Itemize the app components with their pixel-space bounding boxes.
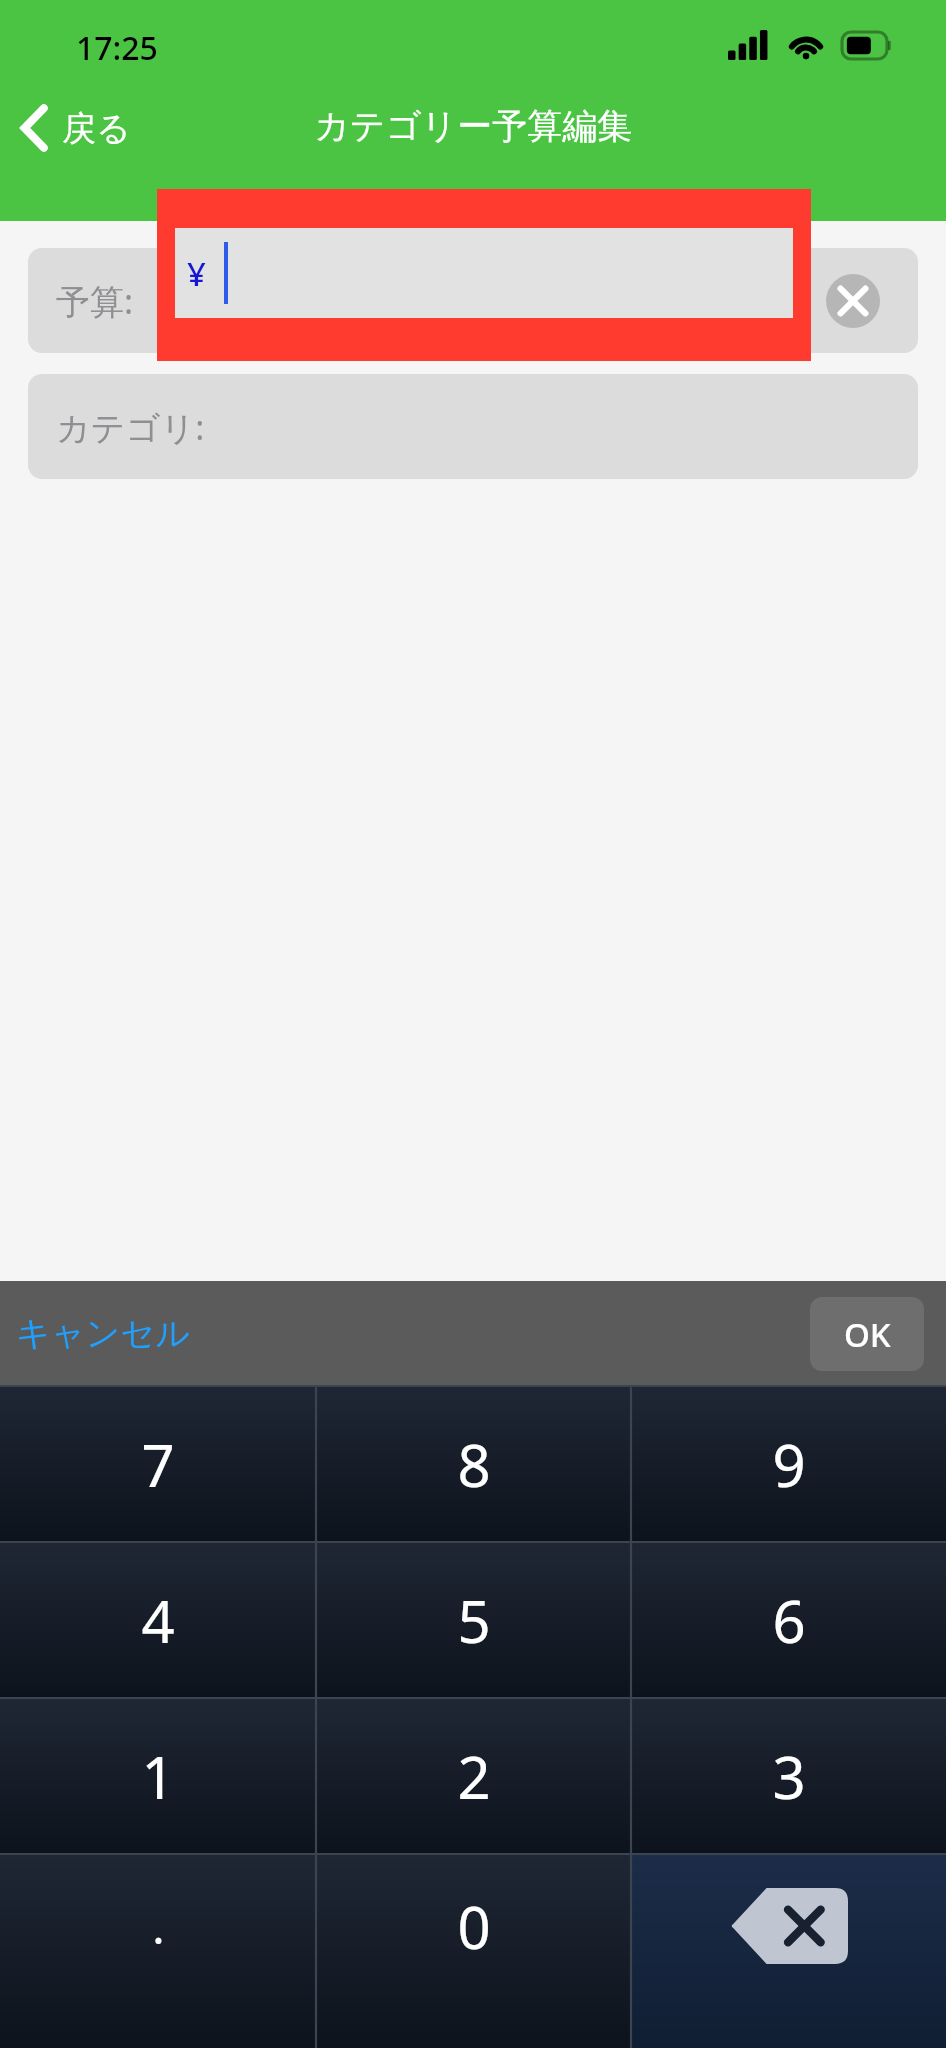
button[interactable]: ¥ — [175, 228, 793, 318]
staticText: 17:25 — [76, 26, 158, 70]
button[interactable]: 5 — [316, 1542, 631, 1698]
button[interactable]: 0 — [316, 1854, 631, 2048]
button[interactable]: 2 — [316, 1698, 631, 1854]
button[interactable]: 9 — [631, 1386, 946, 1542]
button[interactable]: 8 — [316, 1386, 631, 1542]
staticText: カテゴリー予算編集 — [314, 104, 633, 148]
staticText: 4 — [141, 1581, 175, 1660]
button[interactable]: 戻る — [10, 98, 143, 158]
staticText: 予算: — [56, 278, 134, 324]
button[interactable]: . — [0, 1854, 316, 2048]
button[interactable]: OK — [810, 1297, 924, 1371]
button[interactable]: Backspace — [631, 1854, 946, 2048]
staticText: 0 — [457, 1887, 491, 1966]
button[interactable]: 3 — [631, 1698, 946, 1854]
button[interactable]: Clear — [826, 274, 880, 328]
button[interactable]: キャンセル — [0, 1302, 204, 1365]
staticText: 5 — [457, 1581, 491, 1660]
button[interactable]: カテゴリ: — [28, 374, 918, 479]
staticText: ¥ — [187, 251, 206, 296]
button[interactable]: 7 — [0, 1386, 316, 1542]
staticText: 戻る — [62, 107, 131, 150]
staticText: 8 — [457, 1425, 491, 1504]
staticText: 1 — [141, 1737, 175, 1816]
button[interactable]: 6 — [631, 1542, 946, 1698]
button[interactable]: 予算: — [28, 248, 918, 353]
staticText: . — [152, 1895, 165, 1958]
staticText: 2 — [457, 1737, 491, 1816]
staticText: 7 — [141, 1425, 175, 1504]
staticText: 6 — [772, 1581, 806, 1660]
staticText: 3 — [772, 1737, 806, 1816]
staticText: OK — [844, 1312, 891, 1357]
button[interactable]: 1 — [0, 1698, 316, 1854]
staticText: カテゴリ: — [56, 404, 205, 450]
staticText: 9 — [772, 1425, 806, 1504]
button[interactable]: 4 — [0, 1542, 316, 1698]
